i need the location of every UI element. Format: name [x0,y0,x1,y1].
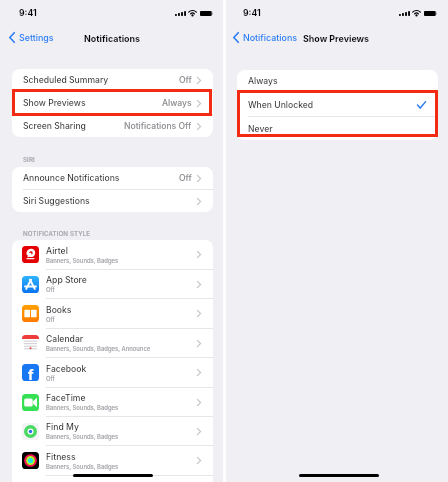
staticText: Airtel [46,246,68,256]
staticText: Banners, Sounds, Badges [46,404,119,411]
other: Wi-Fi [412,10,421,16]
staticText: Show Previews [303,33,370,44]
staticText: Always [248,76,278,86]
staticText: Banners, Sounds, Badges [46,257,119,264]
button[interactable]: Find My [12,417,213,446]
staticText: When Unlocked [248,100,314,110]
staticText: Notifications [84,33,141,44]
staticText: Off [46,316,55,323]
staticText: Show Previews [23,98,86,108]
staticText: FaceTime [46,393,86,403]
button[interactable]: Airtel [12,240,213,270]
button[interactable]: Never [237,117,438,140]
other: Cellular signal [175,11,186,16]
other: Cellular signal [399,11,410,16]
button[interactable]: Settings [5,30,58,45]
staticText: 9:41 [19,8,37,18]
button[interactable]: Announce Notifications [12,167,213,190]
button[interactable]: Books [12,299,213,329]
other: Battery [200,11,213,16]
staticText: Off [179,173,192,183]
button[interactable]: Notifications [229,30,302,45]
staticText: Off [46,375,55,382]
staticText: Scheduled Summary [23,75,109,85]
button[interactable]: Screen Sharing [12,115,213,137]
button[interactable]: Siri Suggestions [12,190,213,212]
staticText: Fitness [46,452,76,462]
staticText: Always [162,98,192,108]
staticText: Off [179,75,192,85]
button[interactable]: Always [237,70,438,93]
staticText: Screen Sharing [23,121,86,131]
button[interactable]: App Store [12,270,213,299]
other: Wi-Fi [188,10,197,16]
staticText: Settings [19,32,54,43]
staticText: Facebook [46,364,87,374]
other: Battery [424,11,437,16]
button[interactable]: FaceTime [12,388,213,417]
staticText: Banners, Sounds, Badges [46,433,119,440]
button[interactable]: f [12,358,213,388]
staticText: Notifications [243,32,298,43]
staticText: App Store [46,275,87,285]
staticText: Notifications Off [124,121,192,131]
button[interactable]: Scheduled Summary [12,69,213,92]
staticText: f [28,366,34,381]
button[interactable]: Calendar [12,329,213,358]
staticText: Find My [46,422,79,432]
button[interactable]: Fitness [12,446,213,476]
staticText: Never [248,124,273,134]
staticText: Banners, Sounds, Badges [46,463,119,470]
staticText: Calendar [46,334,84,344]
staticText: Banners, Sounds, Badges, Announce [46,345,151,352]
staticText: 9:41 [243,8,261,18]
staticText: SIRI [23,156,35,164]
staticText: Books [46,305,72,315]
button[interactable]: Show Previews [12,92,213,115]
button[interactable]: When Unlocked [237,93,438,117]
staticText: NOTIFICATION STYLE [23,230,91,238]
staticText: Siri Suggestions [23,196,90,206]
staticText: Announce Notifications [23,173,120,183]
staticText: Off [46,286,55,293]
